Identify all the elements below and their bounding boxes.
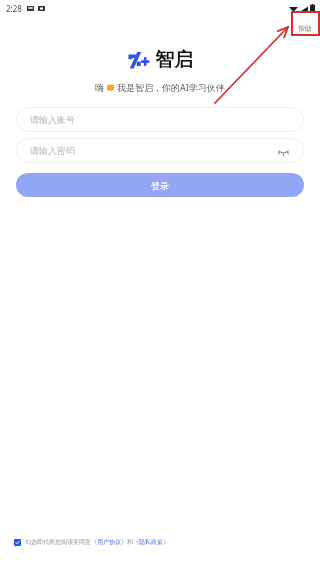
button[interactable]: 《隐私政策》 (133, 538, 169, 546)
staticText: 嗨 (95, 82, 104, 93)
button[interactable]: 帮助 (292, 18, 318, 38)
staticText: 2:28 (6, 3, 22, 14)
staticText: 请输入密码 (30, 145, 75, 156)
staticText: 智启 (155, 48, 193, 72)
button[interactable]: 请输入密码 (16, 138, 304, 163)
button[interactable]: 登录 (16, 173, 304, 197)
button[interactable]: Show password (276, 144, 290, 158)
button[interactable]: 请输入账号 (16, 107, 304, 132)
staticText: 勾选即代表您阅读并同意 (25, 538, 91, 546)
staticText: 登录 (151, 180, 169, 191)
button[interactable]: 勾选即代表您阅读并同意 (14, 538, 320, 546)
staticText: 帮助 (298, 24, 312, 33)
staticText: 我是智启，你的AI学习伙伴 (117, 81, 225, 93)
button[interactable]: 《用户协议》 (91, 538, 127, 546)
staticText: 和 (127, 538, 133, 546)
staticText: 请输入账号 (30, 114, 75, 125)
